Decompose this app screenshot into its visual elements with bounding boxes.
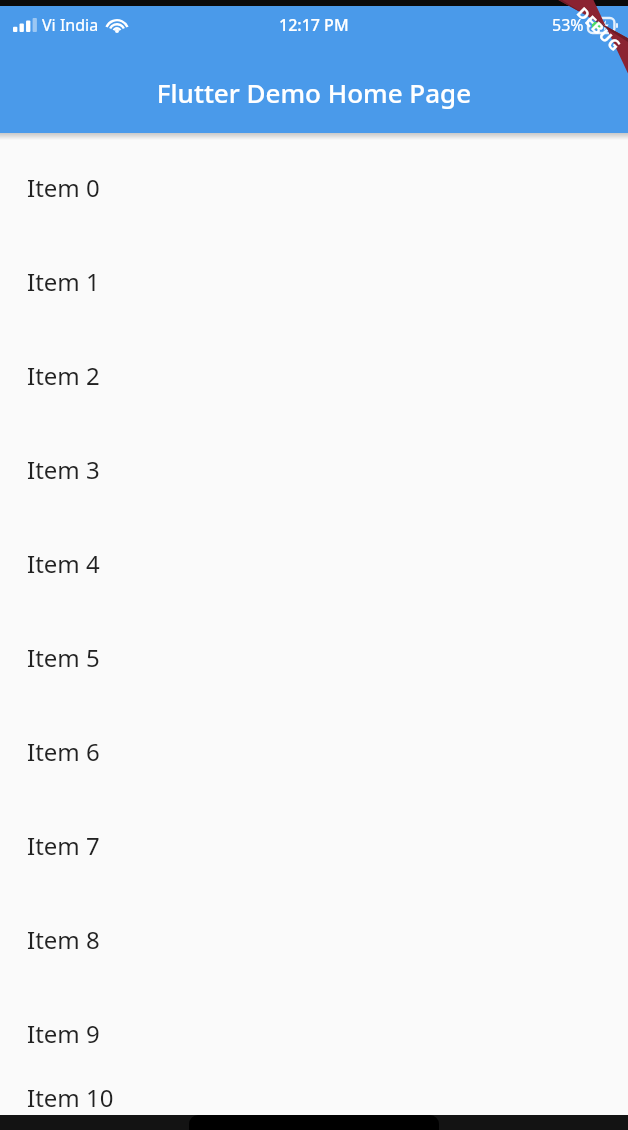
staticText: Flutter Demo Home Page <box>0 75 628 110</box>
staticText: 12:17 PM <box>279 14 349 36</box>
staticText: DEBUG <box>573 2 626 55</box>
button[interactable]: Item 10 <box>0 1080 628 1115</box>
staticText: Item 5 <box>27 641 100 674</box>
other: Debug banner <box>520 0 628 108</box>
staticText: Item 8 <box>27 923 100 956</box>
staticText: Item 9 <box>27 1017 100 1050</box>
staticText: 53% <box>552 14 584 36</box>
button[interactable]: Item 4 <box>0 516 628 610</box>
button[interactable]: Item 6 <box>0 704 628 798</box>
button[interactable]: Item 3 <box>0 422 628 516</box>
staticText: Item 0 <box>27 171 100 204</box>
button[interactable]: Item 2 <box>0 328 628 422</box>
staticText: Item 10 <box>27 1081 114 1114</box>
button[interactable]: Item 7 <box>0 798 628 892</box>
button[interactable]: Item 8 <box>0 892 628 986</box>
staticText: Item 4 <box>27 547 100 580</box>
staticText: Vi India <box>42 14 99 36</box>
button[interactable]: Item 1 <box>0 234 628 328</box>
staticText: Item 1 <box>27 265 100 298</box>
button[interactable]: Item 0 <box>0 140 628 234</box>
staticText: Item 2 <box>27 359 100 392</box>
staticText: Item 3 <box>27 453 100 486</box>
staticText: Item 7 <box>27 829 100 862</box>
staticText: Item 6 <box>27 735 100 768</box>
button[interactable]: Item 9 <box>0 986 628 1080</box>
button[interactable]: Item 5 <box>0 610 628 704</box>
